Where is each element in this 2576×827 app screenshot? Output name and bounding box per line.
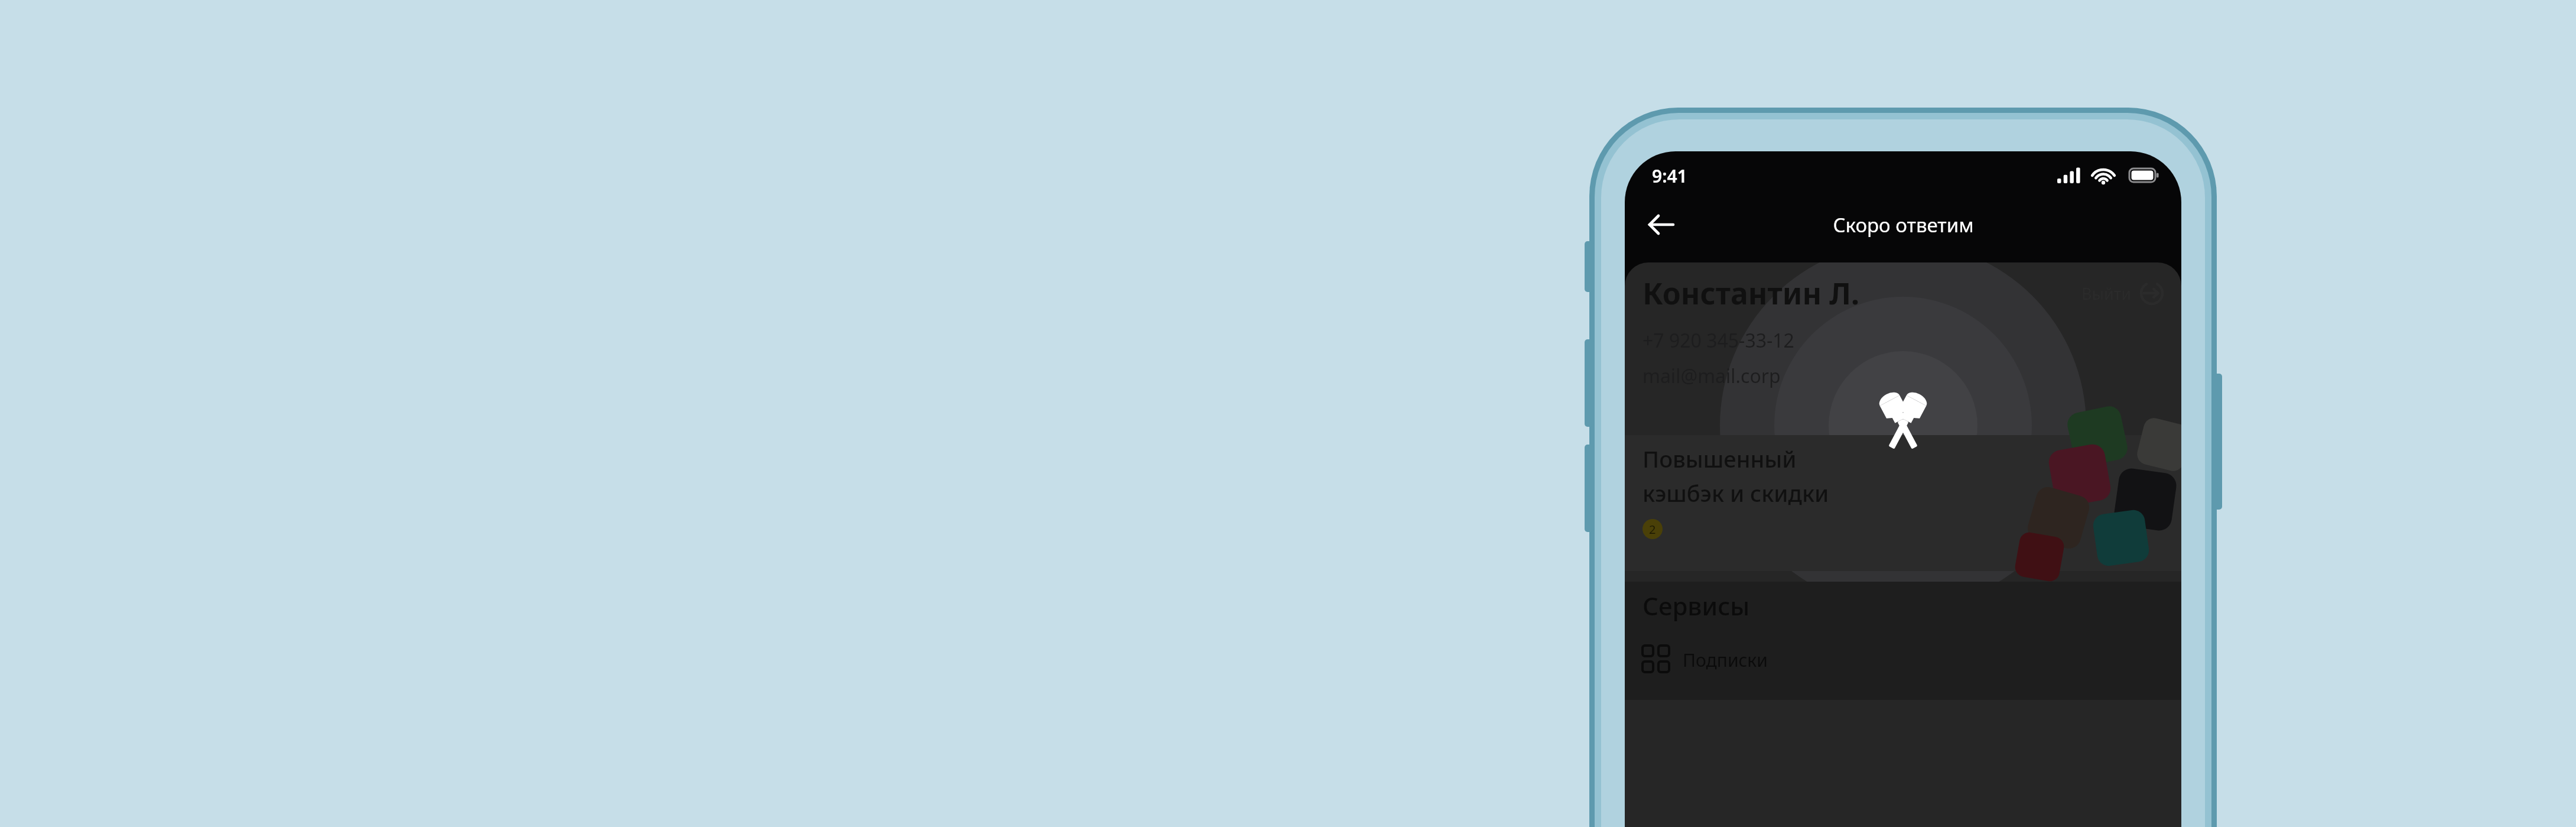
staticText: Сервисы	[1642, 589, 1750, 622]
button[interactable]: Назад	[1640, 203, 1683, 246]
staticText: 2	[1649, 521, 1656, 537]
staticText: Скоро ответим	[1833, 212, 1974, 238]
staticText: кэшбэк и скидки	[1642, 478, 1829, 508]
staticText: Константин Л.	[1642, 273, 1859, 313]
staticText: mail@mail.corp	[1642, 363, 1781, 389]
staticText: Подписки	[1683, 648, 1768, 672]
staticText: Повышенный	[1642, 443, 1797, 474]
staticText: 9:41	[1652, 164, 1687, 188]
staticText: +7 920 345-33-12	[1642, 327, 1794, 353]
